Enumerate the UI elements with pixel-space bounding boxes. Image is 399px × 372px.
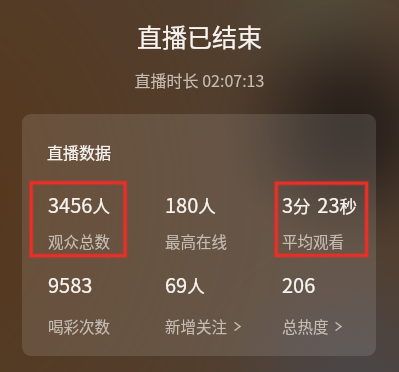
staticText: 平均观看 [282, 230, 345, 252]
staticText: 总热度 [282, 315, 329, 337]
staticText: 直播时长 02:07:13 [0, 68, 399, 91]
staticText: 206 [282, 270, 316, 299]
button[interactable]: 3456人 [48, 190, 128, 252]
staticText: 观众总数 [48, 230, 111, 252]
staticText: 直播数据 [47, 140, 112, 163]
staticText: 3456人 [48, 190, 113, 219]
staticText: 69人 [165, 270, 207, 299]
button[interactable]: 9583 [48, 270, 128, 337]
staticText: 3分 23秒 [282, 190, 360, 219]
staticText: 180人 [165, 190, 218, 219]
staticText: 新增关注 [165, 315, 228, 337]
button[interactable]: 3分 23秒 [282, 190, 362, 252]
staticText: 最高在线 [165, 230, 228, 252]
button[interactable]: 206 [282, 270, 364, 337]
staticText: 9583 [48, 270, 93, 299]
button[interactable]: 180人 [165, 190, 245, 252]
staticText: 喝彩次数 [48, 315, 111, 337]
button[interactable]: 69人 [165, 270, 247, 337]
staticText: 直播已结束 [0, 18, 399, 54]
